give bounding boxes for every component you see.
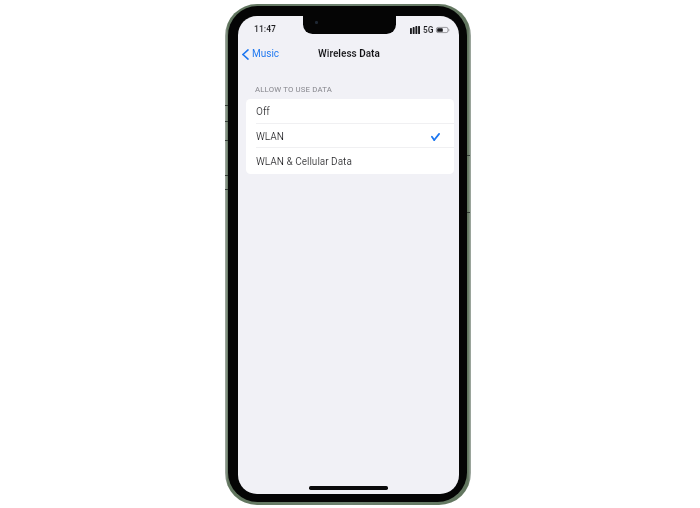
button[interactable]: WLAN & Cellular Data — [246, 149, 454, 174]
staticText: WLAN & Cellular Data — [256, 156, 352, 168]
button[interactable]: WLAN — [246, 124, 454, 149]
staticText: 11:47 — [254, 24, 276, 34]
staticText: Off — [256, 106, 270, 118]
staticText: ALLOW TO USE DATA — [255, 85, 332, 94]
staticText: Wireless Data — [318, 48, 380, 60]
staticText: 5G — [423, 25, 434, 35]
staticText: Music — [252, 48, 280, 60]
button[interactable]: Off — [246, 99, 454, 124]
button[interactable]: Back to Music — [238, 45, 286, 63]
staticText: WLAN — [256, 131, 285, 143]
